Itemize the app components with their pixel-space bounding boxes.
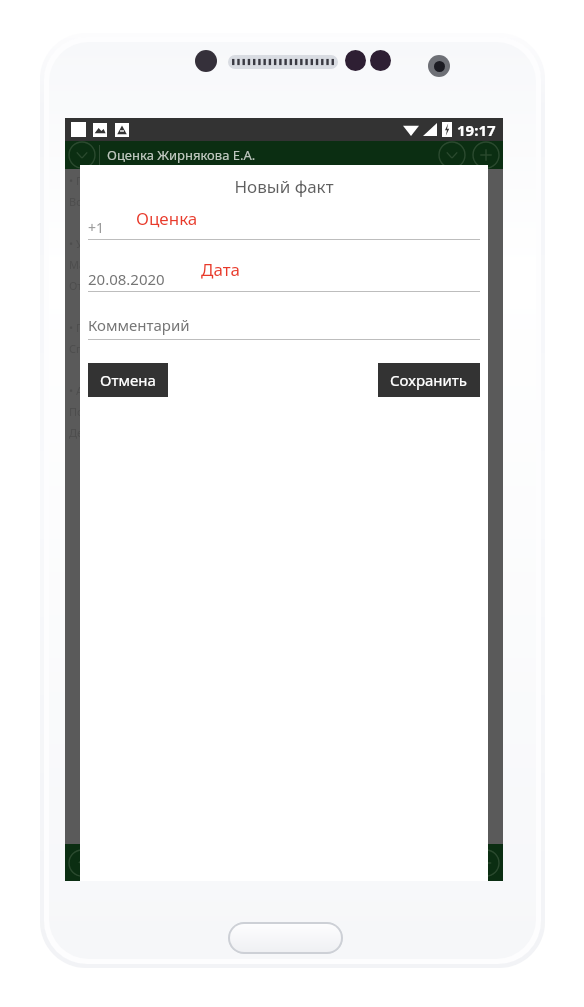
staticText: 20.08.2020 [88, 269, 165, 289]
staticText: Новый факт [234, 175, 334, 198]
staticText: +1 [88, 218, 105, 237]
staticText: 19:17 [457, 120, 496, 140]
staticText: • Успеваемость [69, 236, 151, 251]
staticText: Комментарий [88, 315, 190, 335]
button[interactable]: Сохранить [378, 363, 480, 397]
button[interactable]: Next month [469, 844, 503, 881]
button[interactable]: Collapse [65, 141, 99, 169]
button[interactable]: Collapse all [435, 141, 469, 169]
button[interactable]: +1 [88, 211, 480, 237]
staticText: Оценка Жирнякова Е.А. [107, 146, 256, 164]
button[interactable]: Previous month [65, 844, 99, 881]
button[interactable]: Add [469, 141, 503, 169]
staticText: • Поведение [69, 320, 136, 335]
staticText: Математика — 4 [69, 257, 158, 272]
staticText: Оценка [136, 207, 198, 230]
staticText: Всего пропущено 12 часов [69, 194, 212, 209]
staticText: • Посещаемость [69, 173, 156, 188]
button[interactable]: 20.08.2020 [88, 263, 480, 289]
staticText: Дата [201, 258, 241, 281]
staticText: Отмена [100, 370, 156, 390]
staticText: • Активность [69, 383, 137, 398]
staticText: Спокойный ученик [69, 341, 171, 356]
button[interactable]: Комментарий [88, 314, 480, 336]
staticText: Сохранить [390, 370, 468, 390]
staticText: Помогает другим [69, 404, 163, 419]
staticText: Дежурный [69, 425, 126, 440]
staticText: Отличная работа [69, 278, 162, 293]
button[interactable]: Отмена [88, 363, 168, 397]
